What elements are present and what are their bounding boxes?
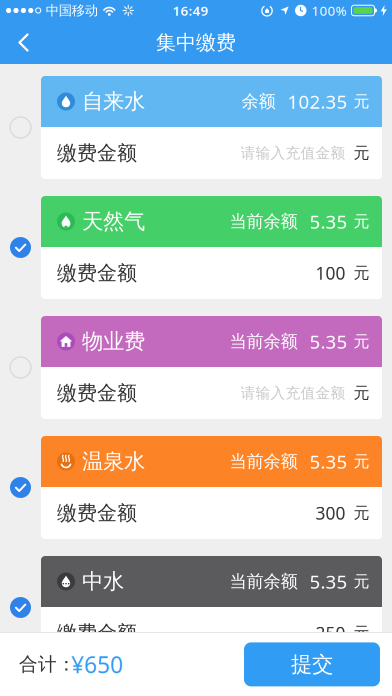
staticText: 集中缴费 xyxy=(156,30,236,55)
staticText: ¥650 xyxy=(71,649,123,679)
staticText: 缴费金额 xyxy=(57,261,137,285)
staticText: 中水 xyxy=(82,568,124,595)
button[interactable]: 提交 xyxy=(244,642,380,686)
staticText: 当前余额 xyxy=(229,451,297,472)
staticText: 元 xyxy=(353,92,369,111)
staticText: 102.35 xyxy=(287,89,347,114)
staticText: 100% xyxy=(311,2,346,19)
staticText: 当前余额 xyxy=(229,331,297,352)
button[interactable]: 取消选择温泉水 xyxy=(10,477,31,498)
staticText: 缴费金额 xyxy=(57,141,137,165)
staticText: 5.35 xyxy=(309,449,347,474)
staticText: 余额 xyxy=(241,91,275,112)
button[interactable]: 温泉水缴费金额输入 xyxy=(41,487,382,539)
staticText: 16:49 xyxy=(172,2,208,19)
button[interactable]: 中水缴费金额输入 xyxy=(41,607,382,659)
button[interactable]: 天然气缴费金额输入 xyxy=(41,247,382,299)
staticText: 元 xyxy=(353,212,369,231)
staticText: 请输入充值金额 xyxy=(240,144,345,162)
staticText: 缴费金额 xyxy=(57,501,137,525)
staticText: 5.35 xyxy=(309,329,347,354)
staticText: 元 xyxy=(353,452,369,471)
button[interactable]: 物业费缴费金额输入 xyxy=(41,367,382,419)
staticText: 请输入充值金额 xyxy=(240,384,345,402)
staticText: 天然气 xyxy=(82,208,145,235)
staticText: 元 xyxy=(353,503,369,523)
staticText: 当前余额 xyxy=(229,571,297,592)
staticText: 当前余额 xyxy=(229,211,297,232)
staticText: 缴费金额 xyxy=(57,381,137,405)
staticText: 100 xyxy=(315,261,345,284)
staticText: 温泉水 xyxy=(82,448,145,475)
button[interactable]: 返回 xyxy=(0,21,31,64)
staticText: 缴费金额 xyxy=(57,621,137,645)
button[interactable]: 选择物业费 xyxy=(10,357,31,378)
staticText: 5.35 xyxy=(309,569,347,594)
staticText: 提交 xyxy=(291,651,333,677)
staticText: 300 xyxy=(315,501,345,524)
button[interactable]: 选择自来水 xyxy=(10,117,31,138)
staticText: 元 xyxy=(353,572,369,591)
staticText: 元 xyxy=(353,143,369,163)
staticText: 元 xyxy=(353,263,369,283)
staticText: 物业费 xyxy=(82,328,145,355)
staticText: 自来水 xyxy=(82,88,145,115)
staticText: 合计： xyxy=(19,653,76,676)
staticText: 中国移动 xyxy=(46,2,98,19)
button[interactable]: 取消选择天然气 xyxy=(10,237,31,258)
button[interactable]: 自来水缴费金额输入 xyxy=(41,127,382,179)
staticText: 元 xyxy=(353,383,369,403)
staticText: 250 xyxy=(315,621,345,644)
staticText: 元 xyxy=(353,332,369,351)
button[interactable]: 取消选择中水 xyxy=(10,597,31,618)
staticText: 元 xyxy=(353,623,369,643)
staticText: 5.35 xyxy=(309,209,347,234)
